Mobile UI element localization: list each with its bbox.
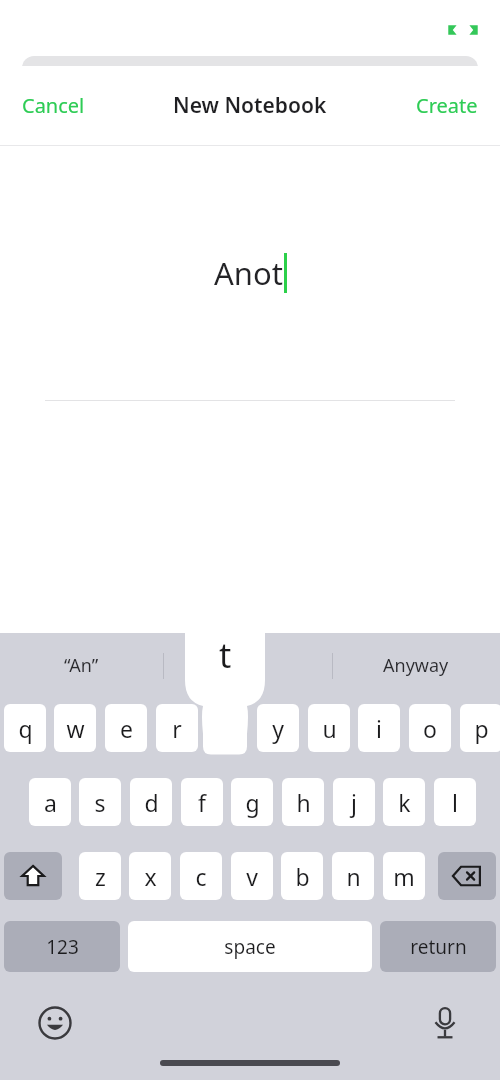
staticText: 123 [46,934,79,960]
staticText: l [452,787,458,818]
button[interactable]: g [231,778,273,826]
button[interactable]: e [105,704,147,752]
staticText: y [272,713,284,744]
staticText: g [245,787,260,818]
button[interactable]: m [383,852,425,900]
staticText: i [376,713,382,744]
button[interactable]: i [358,704,400,752]
button[interactable]: Anot [0,240,500,306]
staticText: Create [416,92,478,119]
button[interactable]: h [282,778,324,826]
button[interactable]: k [383,778,425,826]
button[interactable]: s [79,778,121,826]
staticText: j [351,787,357,818]
staticText: q [18,713,33,744]
button[interactable]: Emoji [30,998,80,1048]
staticText: v [246,861,258,892]
button[interactable]: n [332,852,374,900]
staticText: w [66,713,85,744]
button[interactable]: o [409,704,451,752]
staticText: o [423,713,437,744]
button[interactable]: Cancel [10,84,97,127]
staticText: “An” [64,653,99,678]
staticText: Cancel [22,92,85,119]
staticText: New Notebook [173,91,327,120]
button[interactable]: w [54,704,96,752]
button[interactable]: l [434,778,476,826]
button[interactable]: y [257,704,299,752]
button[interactable]: p [460,704,500,752]
button[interactable]: q [4,704,46,752]
button[interactable]: r [156,704,198,752]
button[interactable]: Delete [438,852,496,900]
button[interactable]: Anyway [332,639,500,691]
staticText: d [144,787,159,818]
staticText: e [120,713,133,744]
staticText: return [410,934,467,960]
staticText: Anot [214,252,283,294]
button[interactable]: b [281,852,323,900]
staticText: m [393,861,415,892]
button[interactable]: Recording [447,21,479,39]
staticText: s [94,787,106,818]
button[interactable]: 123 [4,921,120,972]
staticText: z [95,861,106,892]
button[interactable]: return [380,921,496,972]
button[interactable]: u [308,704,350,752]
staticText: k [398,787,411,818]
staticText: h [296,787,311,818]
staticText: a [44,787,57,818]
button[interactable]: x [129,852,171,900]
staticText: u [322,713,337,744]
button[interactable]: space [128,921,372,972]
button[interactable]: Dictate [420,998,470,1048]
button[interactable]: f [181,778,223,826]
button[interactable]: a [29,778,71,826]
staticText: x [144,861,157,892]
staticText: f [198,787,206,818]
staticText: c [195,861,207,892]
button[interactable]: Create [404,84,490,127]
staticText: p [474,713,489,744]
button[interactable]: z [79,852,121,900]
staticText: space [224,934,276,960]
staticText: t [219,632,232,678]
button[interactable]: c [180,852,222,900]
button[interactable]: “An” [0,639,163,691]
button[interactable]: d [130,778,172,826]
staticText: Anyway [383,653,449,678]
button[interactable]: t [185,618,265,758]
button[interactable]: Shift [4,852,62,900]
staticText: n [346,861,361,892]
button[interactable]: v [231,852,273,900]
button[interactable]: And [163,639,332,691]
staticText: r [172,713,182,744]
button[interactable]: j [333,778,375,826]
staticText: b [295,861,310,892]
